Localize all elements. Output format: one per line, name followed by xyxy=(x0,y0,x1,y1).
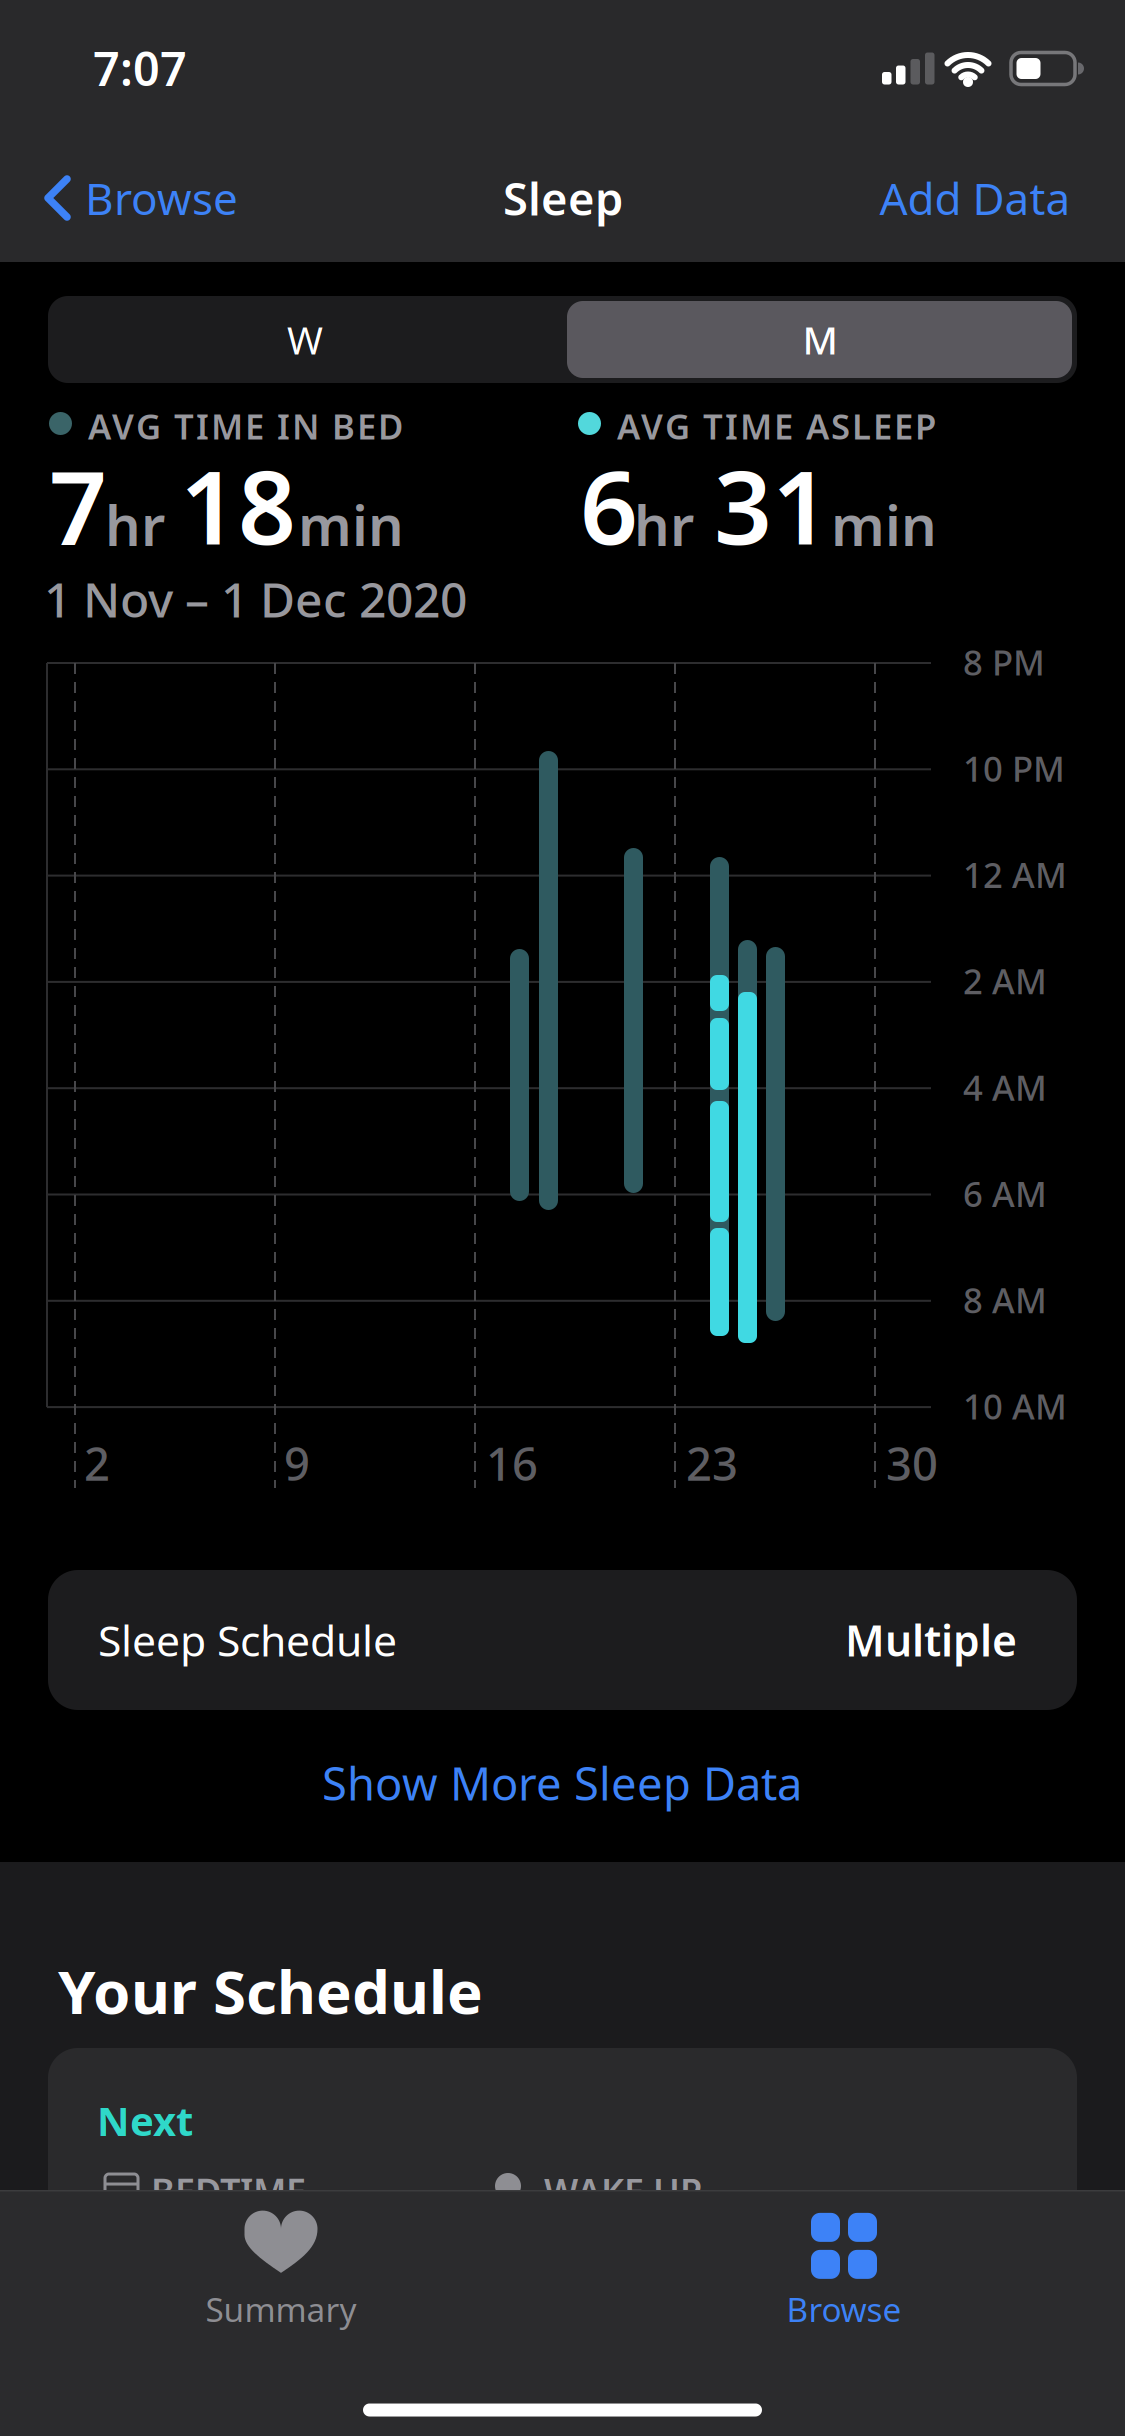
staticText: Multiple xyxy=(845,1612,1017,1668)
staticText: 10 AM xyxy=(963,1383,1067,1429)
staticText: 12 AM xyxy=(963,852,1067,898)
staticText: Summary xyxy=(205,2287,356,2331)
staticText: Show More Sleep Data xyxy=(322,1753,802,1813)
staticText: 4 AM xyxy=(963,1064,1047,1110)
staticText: Next xyxy=(97,2094,193,2147)
staticText: hr xyxy=(105,487,165,561)
button[interactable]: Summary xyxy=(205,2209,356,2331)
staticText: 7 xyxy=(49,438,107,573)
button[interactable]: M xyxy=(563,296,1077,383)
staticText: 18 xyxy=(180,438,296,573)
staticText: Your Schedule xyxy=(58,1951,483,2031)
staticText: Browse xyxy=(85,169,238,227)
staticText: 16 xyxy=(486,1433,538,1493)
staticText: 10 PM xyxy=(963,745,1065,791)
button[interactable]: Add Data xyxy=(879,169,1070,227)
staticText: 2 xyxy=(84,1433,110,1493)
staticText: 9 xyxy=(284,1433,310,1493)
staticText: 8 AM xyxy=(963,1277,1047,1323)
staticText: 8 PM xyxy=(963,639,1045,685)
button[interactable]: Show More Sleep Data xyxy=(322,1753,802,1813)
staticText: 1 Nov – 1 Dec 2020 xyxy=(44,567,467,631)
staticText: 23 xyxy=(686,1433,738,1493)
button[interactable]: Back xyxy=(44,168,238,228)
button[interactable]: Next xyxy=(48,2048,1077,2436)
staticText: 31 xyxy=(714,438,830,573)
staticText: BEDTIME xyxy=(151,2167,306,2215)
button[interactable]: Browse xyxy=(786,2213,901,2331)
staticText: 2 AM xyxy=(963,958,1047,1004)
staticText: 7:07 xyxy=(93,37,187,99)
staticText: min xyxy=(298,487,404,561)
staticText: Sleep Schedule xyxy=(98,1612,397,1668)
staticText: Add Data xyxy=(879,169,1070,227)
staticText: M xyxy=(802,314,837,365)
staticText: Sleep xyxy=(503,168,623,228)
staticText: 6 xyxy=(580,438,638,573)
staticText: AVG TIME ASLEEP xyxy=(617,403,936,449)
staticText: WAKE UP xyxy=(544,2167,702,2215)
button[interactable]: W xyxy=(48,296,562,383)
staticText: 6 AM xyxy=(963,1170,1047,1216)
staticText: Browse xyxy=(786,2287,901,2331)
staticText: W xyxy=(287,314,323,365)
staticText: 30 xyxy=(886,1433,938,1493)
staticText: min xyxy=(831,487,937,561)
button[interactable]: Sleep Schedule xyxy=(48,1570,1077,1710)
staticText: hr xyxy=(634,487,694,561)
staticText: AVG TIME IN BED xyxy=(88,403,403,449)
